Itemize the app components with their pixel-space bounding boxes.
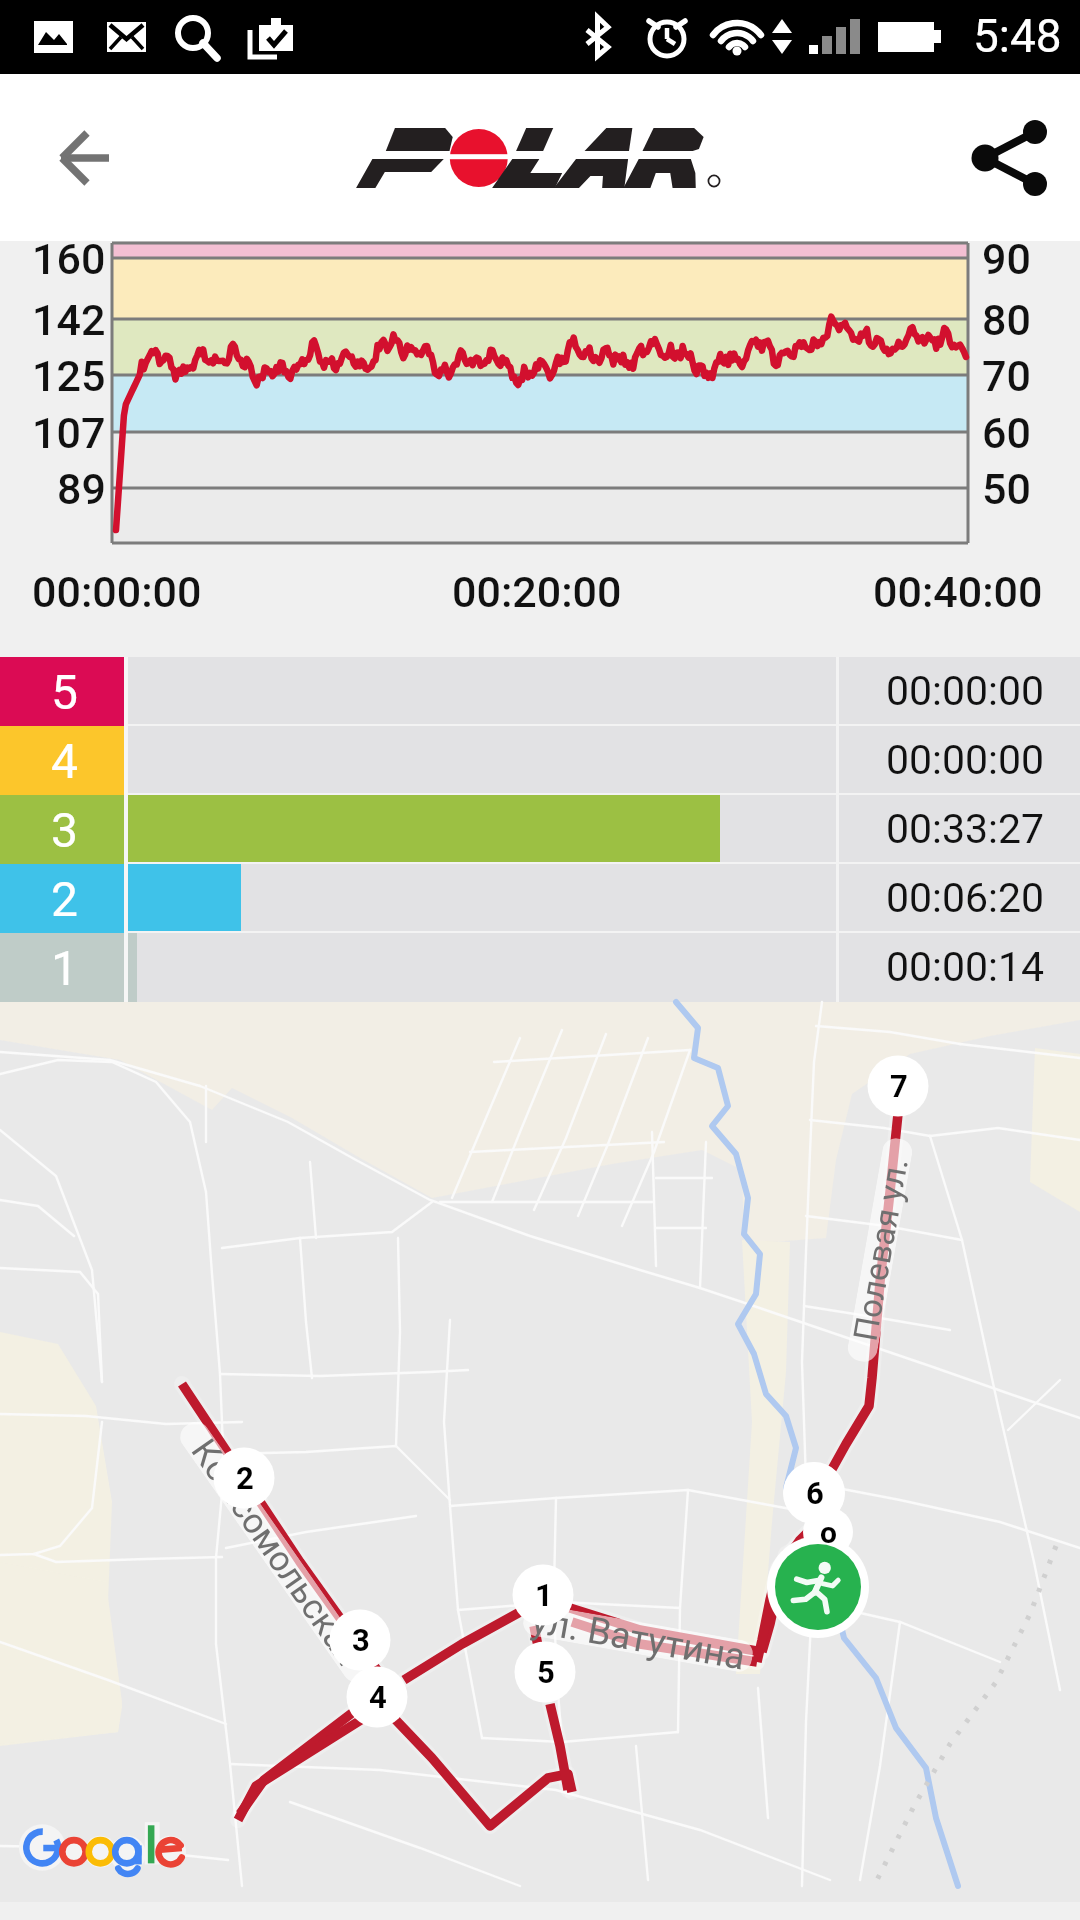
staticText: 3: [352, 1622, 370, 1658]
staticText: 6: [806, 1475, 824, 1511]
staticText: 142: [32, 295, 106, 345]
staticText: 1: [51, 940, 78, 996]
button[interactable]: 3: [0, 795, 1080, 864]
staticText: 60: [982, 408, 1031, 458]
staticText: 2: [51, 871, 78, 927]
staticText: Комсомольская: [182, 1432, 369, 1674]
button[interactable]: 4: [0, 726, 1080, 795]
button[interactable]: Share: [950, 98, 1070, 218]
button[interactable]: 5: [0, 657, 1080, 726]
staticText: 3: [51, 802, 78, 858]
button[interactable]: 2: [0, 864, 1080, 933]
staticText: 89: [57, 464, 106, 514]
staticText: 160: [32, 234, 106, 284]
staticText: 00:40:00: [873, 567, 1043, 617]
button[interactable]: 1: [513, 1565, 574, 1626]
staticText: 80: [982, 295, 1031, 345]
button[interactable]: Running activity: [775, 1544, 861, 1630]
staticText: 90: [982, 234, 1031, 284]
staticText: 2: [236, 1460, 254, 1496]
staticText: ул. Ватутина: [528, 1599, 749, 1679]
button[interactable]: Back: [25, 98, 145, 218]
staticText: 1: [535, 1577, 553, 1613]
button[interactable]: 2: [214, 1448, 275, 1509]
staticText: 00:00:00: [886, 667, 1045, 715]
staticText: 4: [51, 733, 78, 789]
staticText: 00:33:27: [886, 805, 1045, 853]
staticText: 50: [982, 464, 1031, 514]
staticText: 00:00:00: [886, 736, 1045, 784]
staticText: 4: [369, 1679, 387, 1715]
button[interactable]: 6: [784, 1463, 845, 1524]
staticText: Полевая ул.: [845, 1155, 916, 1344]
button[interactable]: 7: [868, 1056, 929, 1117]
staticText: 5: [537, 1654, 555, 1690]
button[interactable]: 1: [0, 933, 1080, 1002]
staticText: 00:06:20: [886, 874, 1045, 922]
staticText: 00:20:00: [452, 567, 622, 617]
staticText: 7: [890, 1068, 908, 1104]
staticText: 107: [32, 408, 106, 458]
button[interactable]: 3: [330, 1610, 391, 1671]
button[interactable]: 5: [515, 1642, 576, 1703]
staticText: 5: [51, 664, 78, 720]
staticText: 00:00:00: [32, 567, 202, 617]
button[interactable]: 4: [347, 1667, 408, 1728]
staticText: 70: [982, 351, 1031, 401]
staticText: 5:48: [973, 9, 1062, 63]
staticText: o: [820, 1515, 837, 1550]
staticText: 00:00:14: [886, 943, 1045, 991]
staticText: 125: [32, 351, 106, 401]
